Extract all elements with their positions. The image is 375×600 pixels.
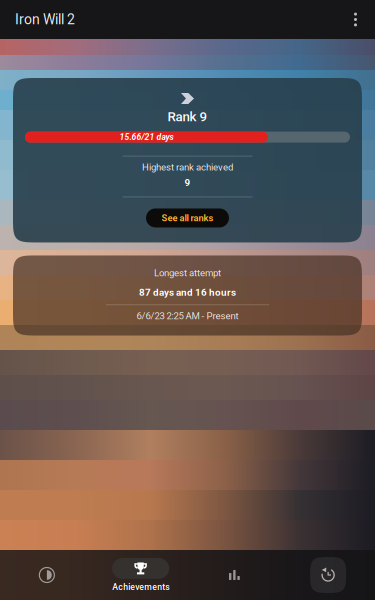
staticText: 87 days and 16 hours	[139, 287, 236, 298]
button[interactable]: Statistics	[187, 550, 281, 600]
staticText: Longest attempt	[154, 267, 221, 279]
staticText: See all ranks	[161, 212, 213, 223]
staticText: Achievements	[112, 582, 169, 592]
button[interactable]: More options	[336, 0, 375, 39]
staticText: Highest rank achieved	[142, 162, 233, 173]
button[interactable]: Timer	[0, 550, 94, 600]
button[interactable]: History	[281, 550, 375, 600]
button[interactable]: Achievements	[94, 550, 188, 600]
staticText: Rank 9	[167, 109, 207, 125]
staticText: 15.66/21 days	[119, 132, 173, 142]
button[interactable]: See all ranks	[146, 208, 229, 227]
staticText: 6/6/23 2:25 AM - Present	[136, 310, 238, 322]
staticText: 9	[184, 177, 190, 188]
staticText: Iron Will 2	[15, 11, 75, 28]
